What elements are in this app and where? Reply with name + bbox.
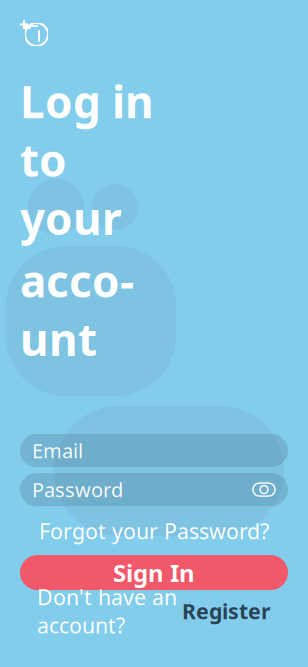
- staticText: account: [20, 251, 134, 368]
- button[interactable]: Sign In: [20, 555, 288, 590]
- staticText: Register: [182, 597, 271, 625]
- button[interactable]: Forgot your Password?: [20, 519, 288, 543]
- staticText: Forgot your Password?: [39, 517, 269, 545]
- button[interactable]: Don't have an account?: [20, 598, 288, 624]
- staticText: Sign In: [113, 557, 195, 588]
- staticText: Email: [32, 437, 83, 464]
- staticText: Password: [32, 476, 123, 503]
- button[interactable]: Back: [20, 18, 54, 52]
- staticText: Log in to your: [20, 72, 154, 247]
- button[interactable]: Email: [20, 434, 288, 467]
- staticText: Don't have an account?: [37, 583, 177, 639]
- button[interactable]: Password: [20, 473, 288, 506]
